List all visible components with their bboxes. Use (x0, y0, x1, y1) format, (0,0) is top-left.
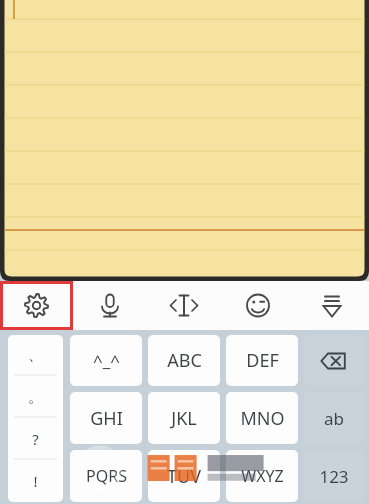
button[interactable]: WXYZ (226, 450, 298, 502)
button[interactable]: PQRS (70, 450, 142, 502)
button[interactable]: ? (8, 418, 63, 460)
staticText: TUV (167, 464, 201, 489)
staticText: ab (324, 407, 344, 430)
button[interactable]: Hide keyboard (295, 281, 369, 330)
button[interactable]: ! (8, 460, 63, 502)
button[interactable]: 123 (304, 450, 363, 502)
staticText: ! (33, 471, 38, 491)
button[interactable]: DEF (226, 335, 298, 386)
staticText: ABC (167, 348, 202, 373)
staticText: 。 (28, 388, 43, 407)
staticText: JKL (171, 406, 197, 431)
button[interactable]: 、 (8, 335, 63, 376)
button[interactable]: Move cursor (147, 281, 221, 330)
button[interactable]: ^_^ (70, 335, 142, 386)
button[interactable]: TUV (148, 450, 220, 502)
staticText: 、 (28, 346, 43, 365)
staticText: PQRS (86, 465, 127, 487)
staticText: 123 (319, 465, 349, 488)
button[interactable]: Voice input (73, 281, 147, 330)
staticText: DEF (246, 348, 279, 373)
button[interactable]: JKL (148, 392, 220, 444)
staticText: WXYZ (241, 465, 284, 487)
staticText: MNO (240, 406, 285, 431)
button[interactable]: 。 (8, 376, 63, 418)
staticText: GHI (90, 406, 123, 431)
button[interactable]: Settings (0, 281, 73, 330)
button[interactable]: Emoji (221, 281, 295, 330)
staticText: ^_^ (93, 349, 120, 372)
button[interactable]: MNO (226, 392, 298, 444)
button[interactable]: ab (304, 392, 363, 444)
button[interactable]: Backspace (304, 335, 363, 386)
staticText: ? (32, 429, 39, 449)
button[interactable]: ABC (148, 335, 220, 386)
button[interactable]: GHI (70, 392, 142, 444)
